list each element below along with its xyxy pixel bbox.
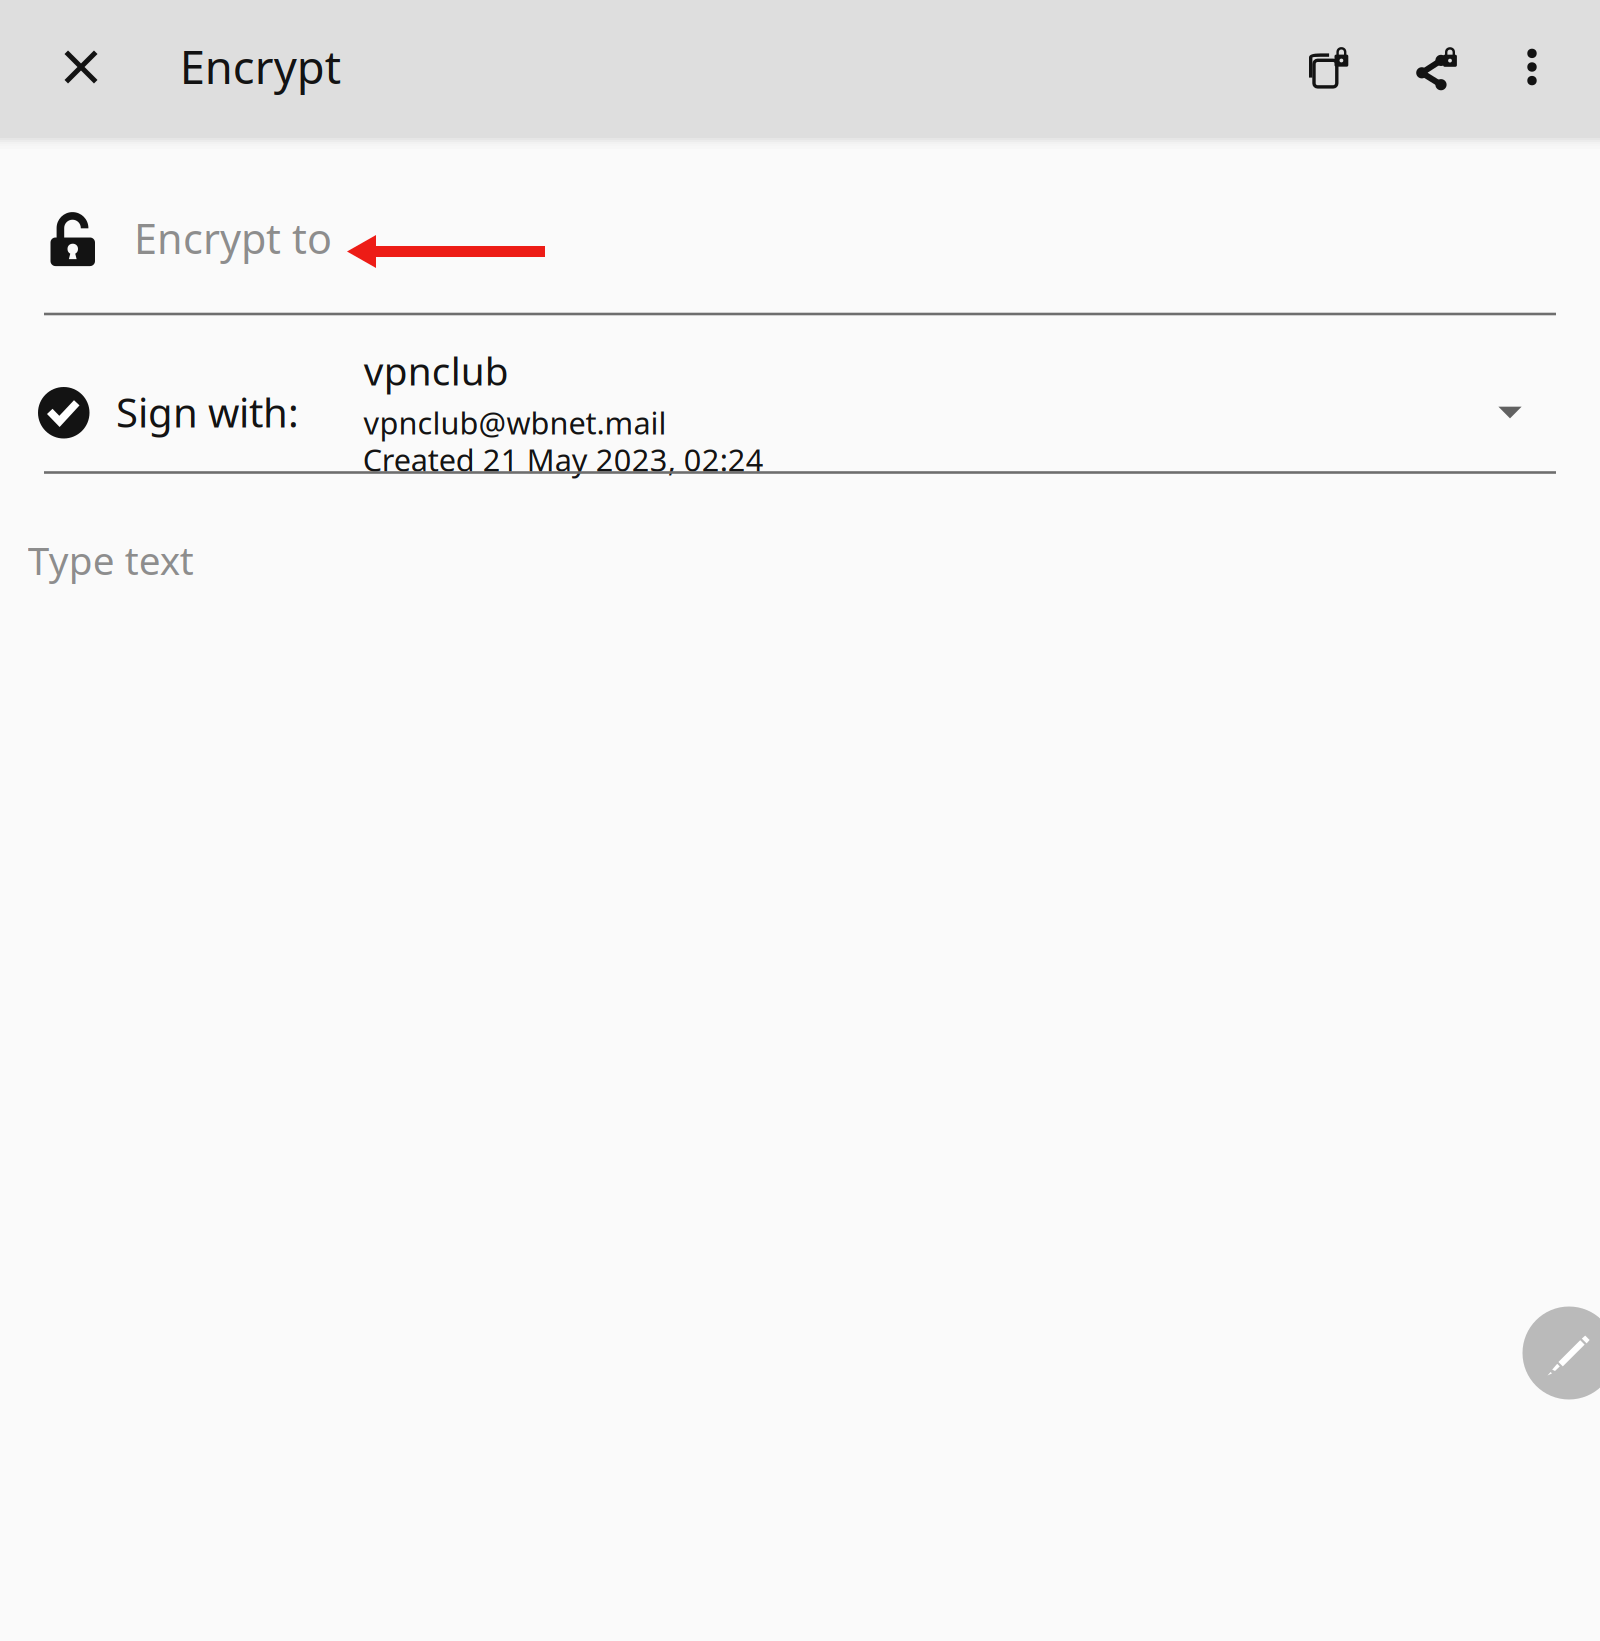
staticText: Encrypt to: [134, 211, 332, 265]
staticText: Encrypt: [180, 36, 341, 96]
button[interactable]: Share encrypted: [1383, 0, 1495, 137]
staticText: Created 21 May 2023, 02:24: [363, 439, 764, 480]
staticText: Type text: [28, 534, 194, 586]
button[interactable]: Sign with:: [0, 315, 1600, 515]
button[interactable]: Copy encrypted: [1275, 0, 1387, 136]
staticText: Sign with:: [116, 385, 299, 438]
button[interactable]: Encrypt to: [0, 137, 1600, 313]
button[interactable]: More options: [1484, 0, 1580, 135]
staticText: vpnclub@wbnet.mail: [364, 402, 667, 443]
staticText: vpnclub: [364, 345, 509, 396]
button[interactable]: Compose: [1522, 1306, 1600, 1399]
button[interactable]: Close: [19, 0, 143, 135]
